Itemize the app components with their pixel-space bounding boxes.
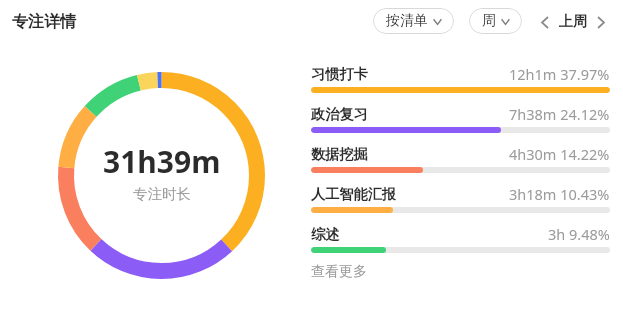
staticText: 3h18m 10.43% [509,184,610,204]
button[interactable]: Next week [592,10,610,34]
other: Focus time breakdown chart [58,72,265,279]
button[interactable]: 查看更多 [311,263,367,281]
button[interactable]: 政治复习 [311,104,610,133]
staticText: 7h38m 24.12% [509,104,610,124]
staticText: 习惯打卡 [311,65,368,83]
staticText: 查看更多 [311,263,367,281]
staticText: 周 [482,12,496,30]
staticText: 专注时长 [133,185,191,203]
staticText: 12h1m 37.97% [509,64,610,84]
staticText: 数据挖掘 [311,145,368,163]
staticText: 31h39m [103,141,221,182]
button[interactable]: 习惯打卡 [311,64,610,93]
button[interactable]: 数据挖掘 [311,144,610,173]
button[interactable]: 上周 [554,10,592,34]
button[interactable]: Previous week [536,10,554,34]
staticText: 上周 [559,13,587,31]
button[interactable]: 按清单 [373,8,454,34]
button[interactable]: 周 [469,8,522,34]
staticText: 综述 [311,225,340,243]
staticText: 人工智能汇报 [311,185,397,203]
staticText: 3h 9.48% [548,224,610,244]
button[interactable]: 综述 [311,224,610,253]
staticText: 政治复习 [311,105,368,123]
staticText: 按清单 [386,12,428,30]
staticText: 专注详情 [12,12,76,32]
staticText: 4h30m 14.22% [509,144,610,164]
button[interactable]: 人工智能汇报 [311,184,610,213]
